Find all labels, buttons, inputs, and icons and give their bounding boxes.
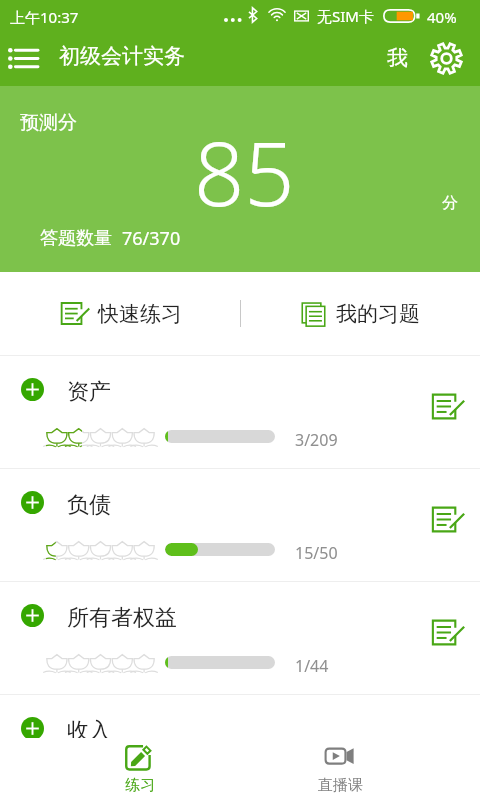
staticText: 40% — [427, 7, 457, 27]
button[interactable]: Practice — [428, 387, 468, 427]
staticText: 1/44 — [295, 655, 329, 677]
staticText: 练习 — [125, 776, 155, 795]
staticText: 我 — [387, 45, 408, 71]
staticText: 上午10:37 — [10, 7, 79, 27]
button[interactable]: 资产 — [0, 356, 480, 468]
staticText: 分 — [442, 193, 458, 213]
button[interactable]: 快速练习 — [40, 272, 220, 355]
staticText: 15/50 — [295, 542, 338, 564]
staticText: 资产 — [67, 378, 111, 406]
button[interactable]: Settings — [426, 38, 466, 78]
staticText: 3/209 — [295, 429, 338, 451]
staticText: 直播课 — [318, 776, 363, 795]
button[interactable]: 收入 — [0, 695, 480, 800]
button[interactable]: 直播课 — [290, 738, 390, 800]
staticText: 预测分 — [20, 111, 77, 135]
staticText: 答题数量 — [40, 227, 112, 250]
button[interactable]: 我 — [380, 41, 414, 75]
staticText: 初级会计实务 — [59, 43, 185, 69]
button[interactable]: 所有者权益 — [0, 582, 480, 694]
button[interactable]: Menu — [8, 43, 38, 73]
button[interactable]: Practice — [428, 500, 468, 540]
staticText: 快速练习 — [98, 301, 182, 327]
staticText: 76/370 — [122, 226, 181, 251]
staticText: 所有者权益 — [67, 604, 177, 632]
button[interactable]: 练习 — [90, 738, 190, 800]
staticText: 无SIM卡 — [317, 6, 374, 26]
staticText: 我的习题 — [336, 301, 420, 327]
button[interactable]: 我的习题 — [280, 272, 460, 355]
staticText: 负债 — [67, 491, 111, 519]
staticText: 收入 — [67, 717, 111, 745]
button[interactable]: 负债 — [0, 469, 480, 581]
staticText: 85 — [194, 112, 295, 232]
button[interactable]: Practice — [428, 613, 468, 653]
